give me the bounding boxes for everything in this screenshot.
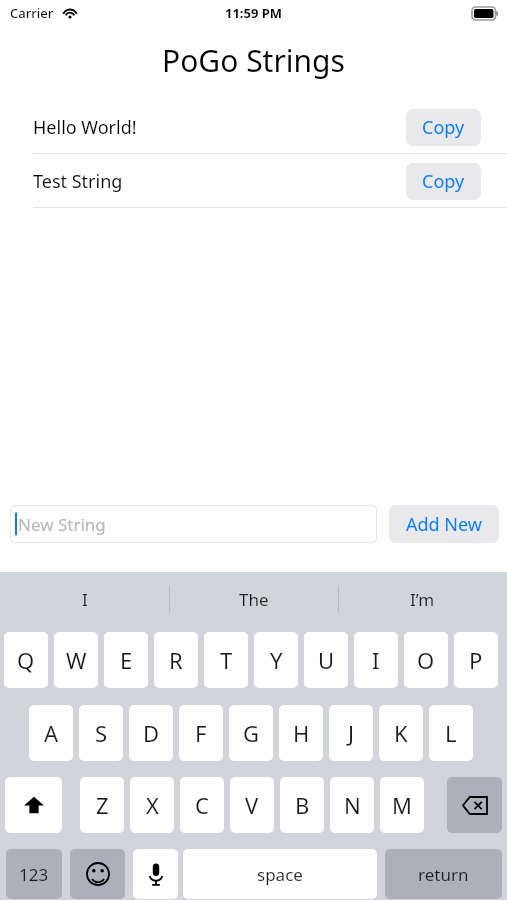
button[interactable]: A — [29, 705, 73, 761]
button[interactable]: E — [104, 632, 148, 688]
staticText: K — [394, 718, 408, 748]
staticText: M — [392, 790, 412, 820]
button[interactable]: J — [329, 705, 373, 761]
staticText: PoGo Strings — [0, 40, 507, 81]
staticText: I — [82, 588, 88, 611]
button[interactable]: return — [385, 849, 502, 899]
button[interactable]: T — [204, 632, 248, 688]
button[interactable]: G — [229, 705, 273, 761]
staticText: R — [169, 645, 183, 675]
button[interactable]: S — [79, 705, 123, 761]
button[interactable]: space — [183, 849, 377, 899]
button[interactable]: Backspace — [447, 777, 502, 833]
button[interactable]: Emoji — [70, 849, 125, 899]
button[interactable]: Dictate — [133, 849, 178, 899]
button[interactable]: 123 — [6, 849, 62, 899]
button[interactable]: P — [454, 632, 498, 688]
staticText: A — [44, 718, 59, 748]
staticText: New String — [18, 513, 106, 536]
button[interactable]: K — [379, 705, 423, 761]
staticText: G — [243, 718, 260, 748]
button[interactable]: W — [54, 632, 98, 688]
staticText: V — [245, 790, 259, 820]
staticText: D — [143, 718, 160, 748]
button[interactable]: New String — [10, 505, 377, 543]
staticText: S — [95, 718, 108, 748]
staticText: H — [293, 718, 310, 748]
button[interactable]: Z — [80, 777, 124, 833]
button[interactable]: M — [380, 777, 424, 833]
staticText: Z — [96, 790, 109, 820]
staticText: The — [239, 588, 269, 611]
staticText: C — [195, 790, 209, 820]
button[interactable]: I’m — [338, 572, 507, 627]
staticText: I — [372, 645, 380, 675]
button[interactable]: C — [180, 777, 224, 833]
button[interactable]: Y — [254, 632, 298, 688]
staticText: 123 — [19, 863, 49, 886]
button[interactable]: N — [330, 777, 374, 833]
staticText: N — [344, 790, 361, 820]
staticText: E — [120, 645, 133, 675]
staticText: Carrier — [10, 4, 54, 22]
button[interactable]: D — [129, 705, 173, 761]
button[interactable]: Shift — [5, 777, 62, 833]
staticText: Add New — [406, 512, 482, 537]
button[interactable]: Copy — [406, 163, 481, 200]
staticText: Copy — [422, 115, 465, 140]
staticText: W — [66, 645, 87, 675]
staticText: 11:59 PM — [225, 4, 283, 22]
staticText: X — [146, 790, 159, 820]
button[interactable]: I — [0, 572, 169, 627]
staticText: J — [348, 718, 355, 748]
staticText: O — [417, 645, 435, 675]
button[interactable]: R — [154, 632, 198, 688]
button[interactable]: F — [179, 705, 223, 761]
staticText: Q — [17, 645, 35, 675]
button[interactable]: L — [429, 705, 473, 761]
staticText: Y — [270, 645, 283, 675]
staticText: Test String — [33, 169, 123, 194]
staticText: U — [318, 645, 335, 675]
button[interactable]: The — [169, 572, 338, 627]
button[interactable]: I — [354, 632, 398, 688]
button[interactable]: U — [304, 632, 348, 688]
button[interactable]: V — [230, 777, 274, 833]
staticText: space — [257, 863, 303, 886]
staticText: I’m — [410, 588, 435, 611]
button[interactable]: O — [404, 632, 448, 688]
staticText: T — [220, 645, 233, 675]
button[interactable]: Add New — [389, 505, 499, 543]
staticText: B — [295, 790, 310, 820]
button[interactable]: B — [280, 777, 324, 833]
button[interactable]: H — [279, 705, 323, 761]
button[interactable]: Q — [4, 632, 48, 688]
staticText: return — [418, 863, 469, 886]
staticText: L — [445, 718, 457, 748]
button[interactable]: Copy — [406, 109, 481, 146]
staticText: Copy — [422, 169, 465, 194]
staticText: F — [195, 718, 207, 748]
staticText: P — [469, 645, 483, 675]
button[interactable]: X — [130, 777, 174, 833]
staticText: Hello World! — [33, 115, 137, 140]
